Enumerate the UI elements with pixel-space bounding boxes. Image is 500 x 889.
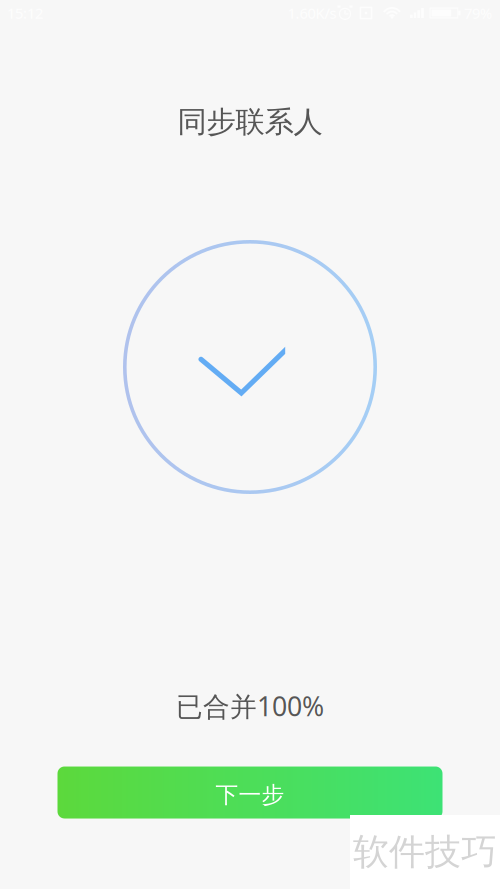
staticText: 下一步: [215, 781, 284, 809]
staticText: 已合并100%: [176, 688, 324, 724]
staticText: 同步联系人: [177, 104, 322, 140]
staticText: 软件技巧: [353, 830, 497, 874]
button[interactable]: 下一步: [57, 766, 442, 818]
